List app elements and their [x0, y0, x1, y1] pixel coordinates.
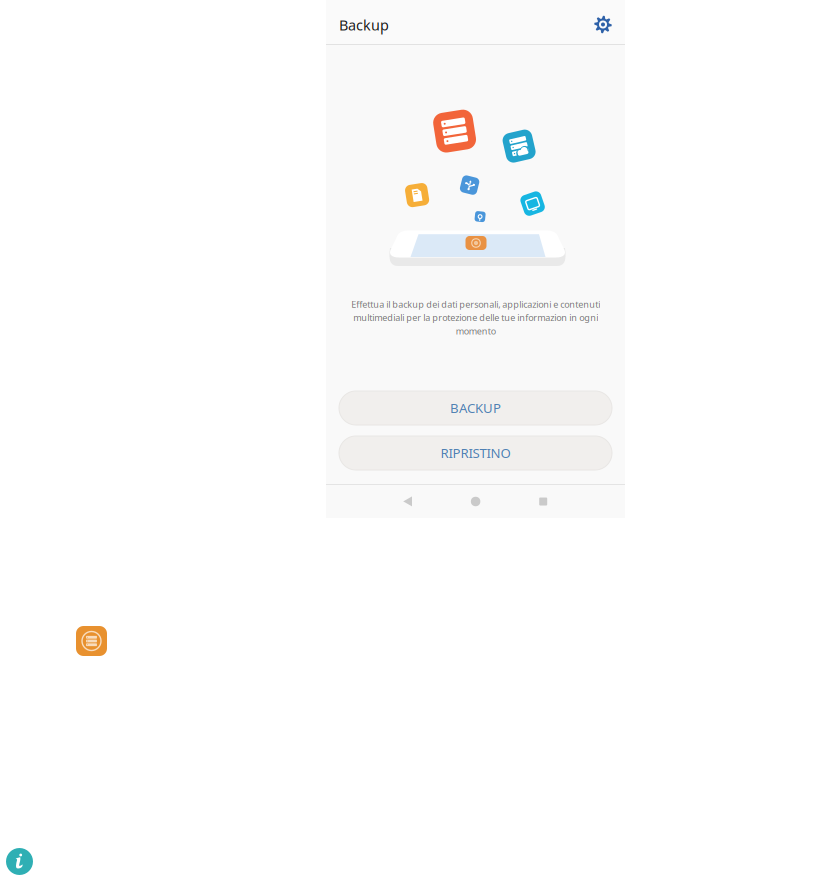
button[interactable]: Recents: [525, 485, 561, 518]
staticText: Effettua il backup dei dati personali, a…: [351, 298, 600, 310]
button[interactable]: Back: [390, 485, 426, 518]
button[interactable]: Info: [6, 848, 33, 875]
staticText: Backup: [339, 15, 389, 35]
button[interactable]: Home: [458, 485, 494, 518]
button[interactable]: BACKUP: [339, 391, 612, 425]
button[interactable]: RIPRISTINO: [339, 436, 612, 470]
staticText: RIPRISTINO: [440, 444, 510, 462]
staticText: multimediali per la protezione delle tue…: [353, 311, 598, 324]
staticText: momento: [455, 325, 495, 337]
staticText: BACKUP: [450, 399, 501, 417]
button[interactable]: Settings: [587, 6, 619, 38]
